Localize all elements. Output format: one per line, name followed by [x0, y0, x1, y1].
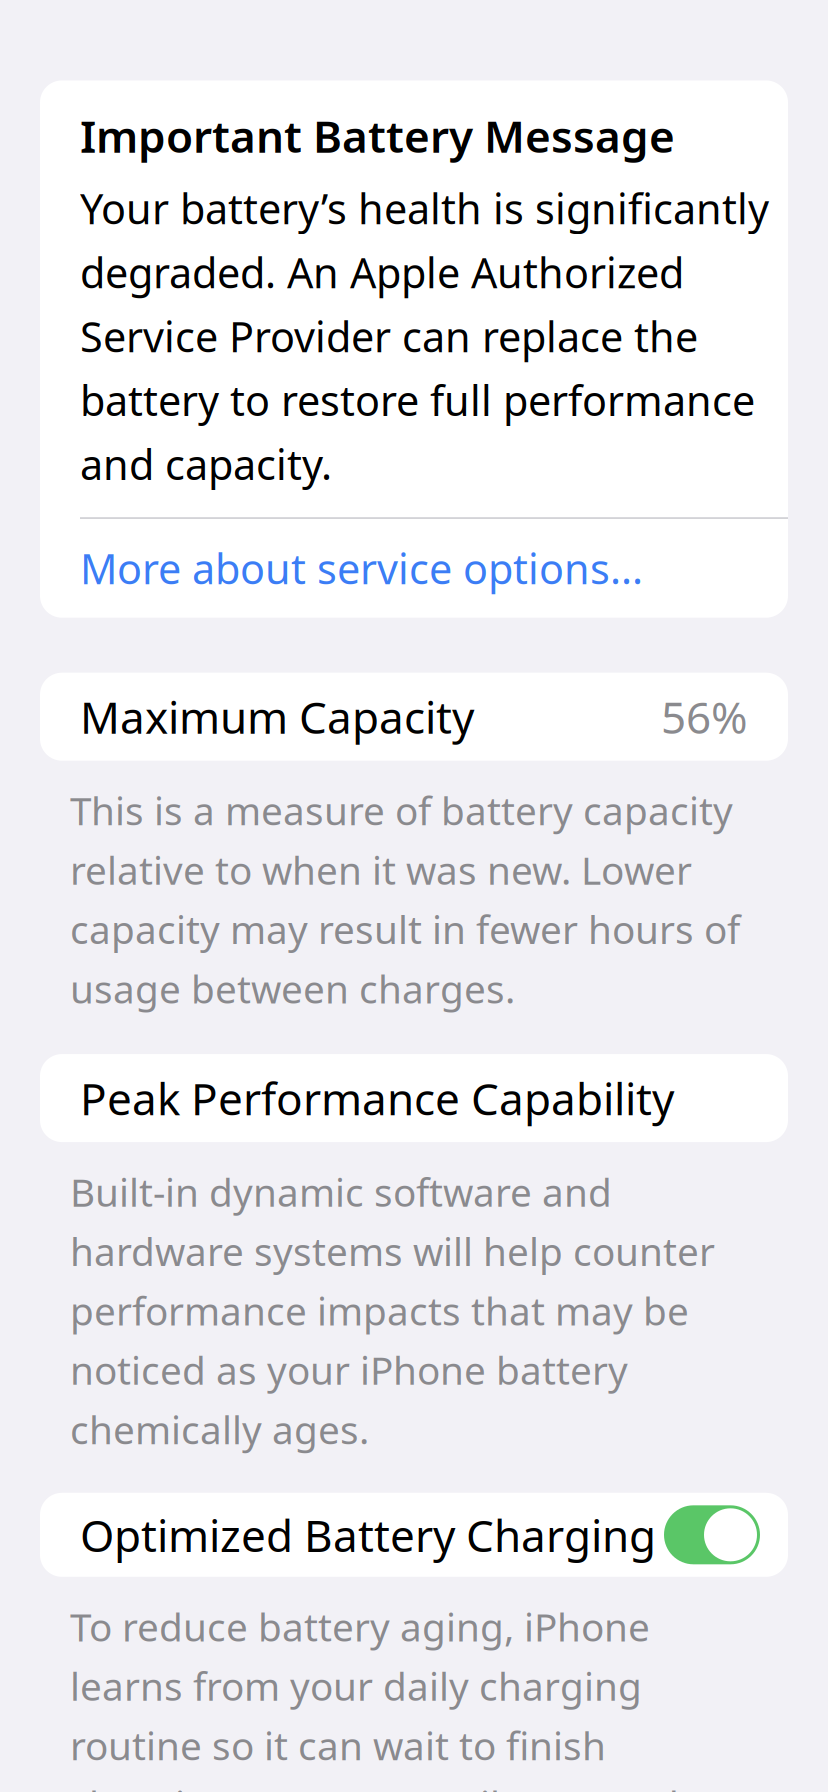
- staticText: Your battery’s health is significantly d…: [80, 181, 769, 491]
- staticText: More about service options...: [80, 541, 643, 596]
- button[interactable]: More about service options...: [80, 519, 788, 618]
- button[interactable]: Maximum Capacity: [40, 673, 788, 761]
- button[interactable]: Optimized Battery Charging: [40, 1493, 788, 1577]
- staticText: Built-in dynamic software and hardware s…: [70, 1166, 715, 1455]
- staticText: Optimized Battery Charging: [80, 1506, 656, 1564]
- staticText: 56%: [661, 687, 748, 746]
- staticText: Important Battery Message: [80, 106, 675, 165]
- staticText: To reduce battery aging, iPhone learns f…: [70, 1601, 726, 1792]
- staticText: This is a measure of battery capacity re…: [70, 785, 740, 1014]
- button[interactable]: Peak Performance Capability: [40, 1054, 788, 1142]
- staticText: Peak Performance Capability: [80, 1069, 674, 1127]
- staticText: Maximum Capacity: [80, 687, 474, 746]
